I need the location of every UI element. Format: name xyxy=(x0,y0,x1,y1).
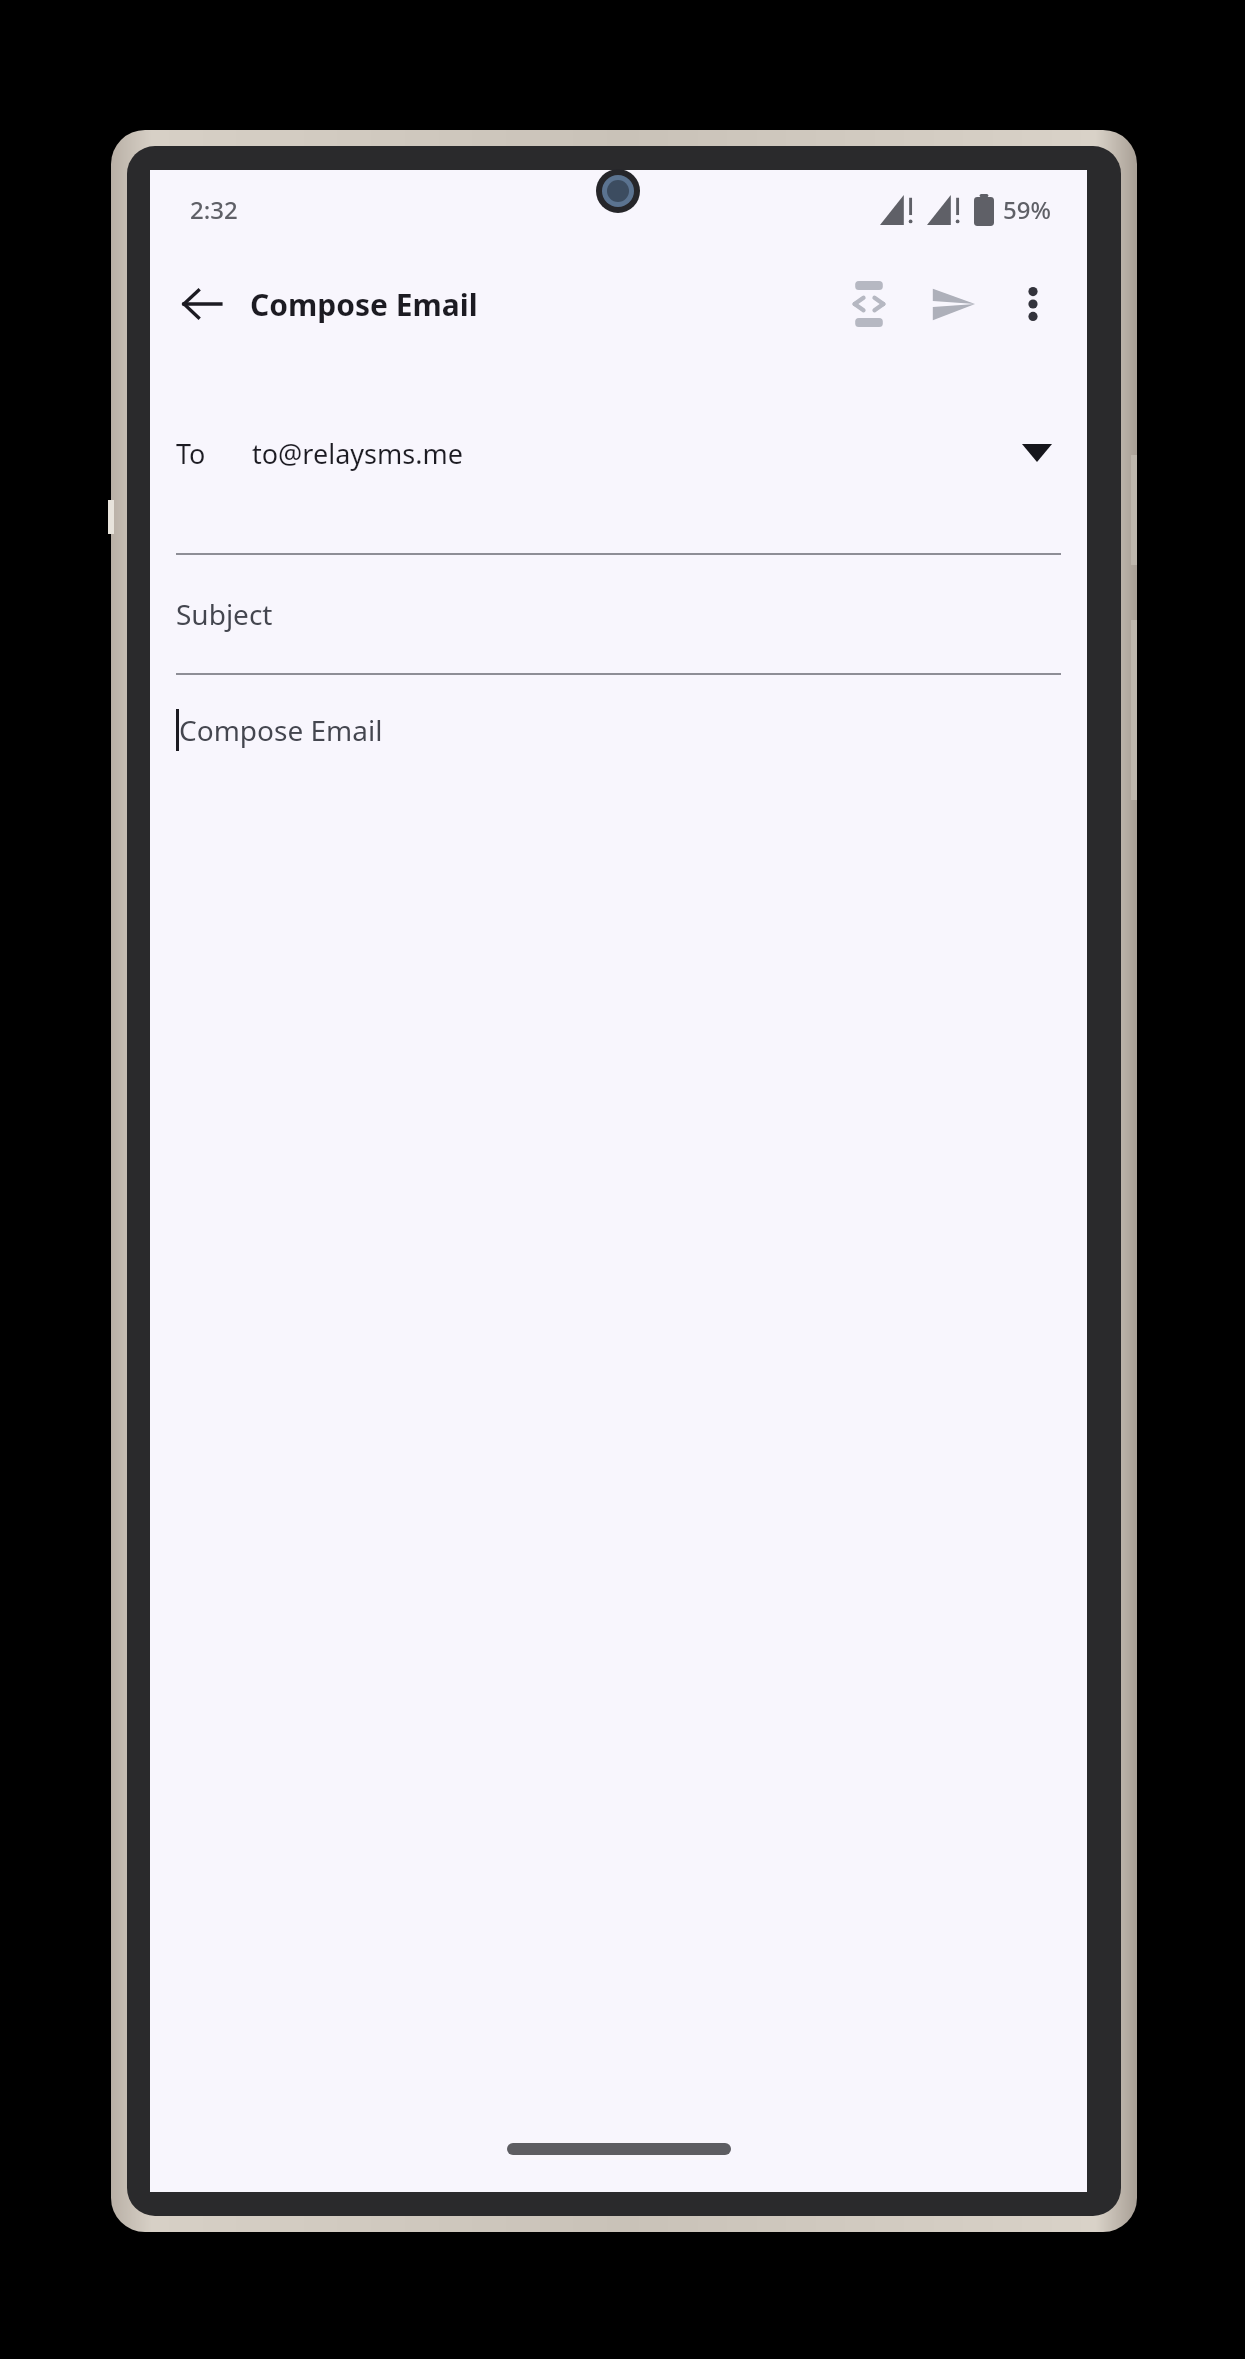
other: Expand recipients xyxy=(1007,423,1067,483)
button[interactable]: Send xyxy=(911,262,995,346)
staticText: Compose Email xyxy=(250,284,478,325)
staticText: Compose Email xyxy=(179,711,383,749)
staticText: 59% xyxy=(1003,193,1051,226)
staticText: Subject xyxy=(176,595,273,633)
button[interactable]: Toggle code view xyxy=(827,262,911,346)
button[interactable]: Back xyxy=(164,266,240,342)
button[interactable]: More options xyxy=(995,266,1071,342)
button[interactable]: Compose Email xyxy=(150,675,1087,2122)
button[interactable]: Subject xyxy=(150,555,1087,673)
staticText: to@relaysms.me xyxy=(252,435,463,472)
button[interactable]: To xyxy=(150,412,1087,494)
staticText: To xyxy=(176,435,206,472)
staticText: 2:32 xyxy=(190,193,238,226)
